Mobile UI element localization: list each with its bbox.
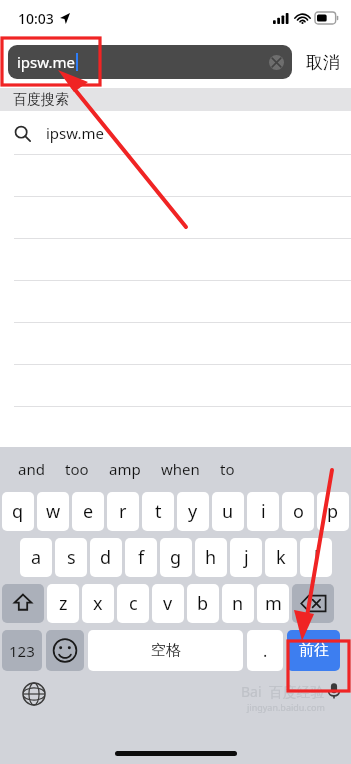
staticText: t	[155, 499, 162, 524]
button[interactable]: q	[2, 492, 34, 531]
staticText: i	[261, 499, 266, 524]
button[interactable]: b	[187, 584, 219, 623]
button[interactable]: k	[265, 538, 297, 577]
button[interactable]	[0, 365, 351, 407]
button[interactable]: e	[72, 492, 104, 531]
staticText: q	[12, 499, 24, 524]
staticText: p	[327, 499, 339, 524]
staticText: x	[93, 591, 103, 616]
button[interactable]: o	[282, 492, 314, 531]
button[interactable]: Change keyboard language	[22, 682, 46, 706]
staticText: when	[161, 459, 200, 479]
staticText: .	[263, 640, 268, 662]
button[interactable]: v	[152, 584, 184, 623]
staticText: and	[18, 459, 45, 479]
staticText: Bai 百度经验	[241, 682, 325, 701]
button[interactable]: .	[247, 630, 283, 671]
staticText: ipsw.me	[46, 123, 104, 143]
button[interactable]: too	[55, 453, 99, 485]
button[interactable]: c	[117, 584, 149, 623]
staticText: d	[100, 545, 112, 570]
button[interactable]: m	[257, 584, 289, 623]
button[interactable]: y	[177, 492, 209, 531]
button[interactable]: 取消	[304, 48, 342, 77]
staticText: k	[276, 545, 286, 570]
button[interactable]: s	[55, 538, 87, 577]
staticText: w	[46, 499, 61, 524]
button[interactable]: a	[20, 538, 52, 577]
button[interactable]: and	[8, 453, 55, 485]
button[interactable]: g	[160, 538, 192, 577]
button[interactable]: d	[90, 538, 122, 577]
button[interactable]: j	[230, 538, 262, 577]
button[interactable]: i	[247, 492, 279, 531]
button[interactable]	[0, 239, 351, 281]
staticText: e	[83, 499, 94, 524]
staticText: z	[59, 591, 68, 616]
button[interactable]: 123	[2, 630, 42, 671]
button[interactable]: t	[142, 492, 174, 531]
staticText: n	[232, 591, 244, 616]
staticText: r	[119, 499, 127, 524]
button[interactable]: Backspace	[292, 584, 334, 623]
staticText: h	[205, 545, 217, 570]
staticText: 10:03	[18, 9, 54, 28]
staticText: m	[265, 591, 282, 616]
button[interactable]: ipsw.me	[0, 111, 351, 155]
staticText: to	[220, 459, 235, 479]
staticText: v	[163, 591, 173, 616]
button[interactable]: 前往	[287, 630, 340, 671]
button[interactable]: ipsw.me	[8, 45, 292, 79]
staticText: b	[197, 591, 209, 616]
staticText: a	[31, 545, 42, 570]
staticText: 百度搜索	[13, 91, 69, 109]
staticText: 前往	[299, 641, 329, 660]
button[interactable]: z	[47, 584, 79, 623]
staticText: 空格	[151, 641, 181, 660]
staticText: too	[65, 459, 89, 479]
staticText: f	[138, 545, 145, 570]
button[interactable]: f	[125, 538, 157, 577]
button[interactable]: p	[317, 492, 349, 531]
button[interactable]: u	[212, 492, 244, 531]
button[interactable]: l	[300, 538, 332, 577]
staticText: y	[188, 499, 198, 524]
button[interactable]: amp	[99, 453, 151, 485]
staticText: g	[170, 545, 182, 570]
button[interactable]: r	[107, 492, 139, 531]
button[interactable]	[0, 197, 351, 239]
button[interactable]	[0, 323, 351, 365]
button[interactable]	[0, 155, 351, 197]
button[interactable]	[0, 281, 351, 323]
staticText: 取消	[306, 52, 340, 73]
staticText: s	[67, 545, 76, 570]
staticText: ipsw.me	[17, 52, 75, 72]
button[interactable]: Shift	[2, 584, 44, 623]
staticText: o	[293, 499, 304, 524]
staticText: c	[129, 591, 138, 616]
staticText: j	[244, 545, 249, 570]
button[interactable]: Clear text	[269, 55, 284, 70]
staticText: 123	[9, 641, 35, 661]
staticText: l	[314, 545, 319, 570]
button[interactable]: x	[82, 584, 114, 623]
button[interactable]: w	[37, 492, 69, 531]
button[interactable]: 空格	[88, 630, 243, 671]
button[interactable]: when	[151, 453, 210, 485]
button[interactable]: h	[195, 538, 227, 577]
button[interactable]: n	[222, 584, 254, 623]
staticText: amp	[109, 459, 141, 479]
staticText: jingyan.baidu.com	[247, 701, 325, 713]
staticText: u	[222, 499, 234, 524]
button[interactable]: to	[210, 453, 245, 485]
button[interactable]: Emoji keyboard	[46, 630, 84, 671]
button[interactable]: Voice input	[323, 680, 345, 702]
